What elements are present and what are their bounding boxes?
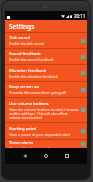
- button[interactable]: Settings: [5, 20, 87, 32]
- staticText: Vibration feedback: [9, 68, 46, 74]
- button[interactable]: Sound feedback: [5, 49, 87, 64]
- staticText: Enable the tick sound: [9, 41, 45, 46]
- staticText: Timer alarm: [9, 140, 33, 146]
- staticText: Have a pause at your stopwatch start: [9, 132, 70, 137]
- staticText: Enable the vibration feedback: [9, 74, 58, 79]
- button[interactable]: Vibration feedback: [5, 65, 87, 81]
- button[interactable]: Timer alarm: [5, 140, 87, 148]
- staticText: Uses the volume buttons to start / resum…: [9, 107, 79, 120]
- staticText: Prevents the screen from going off: [9, 90, 67, 95]
- staticText: Settings: [9, 22, 35, 31]
- button[interactable]: Home: [41, 149, 51, 163]
- staticText: Tick sound: [9, 35, 31, 41]
- staticText: Choose the alarm sound: [9, 146, 50, 148]
- staticText: Starting point: [9, 126, 37, 132]
- button[interactable]: Back: [20, 149, 30, 163]
- staticText: Sound feedback: [9, 51, 41, 57]
- staticText: Keep screen on: [9, 84, 40, 90]
- button[interactable]: Use volume buttons: [5, 98, 87, 122]
- button[interactable]: Starting point: [5, 123, 87, 139]
- button[interactable]: Recents: [62, 149, 72, 163]
- button[interactable]: Keep screen on: [5, 82, 87, 97]
- staticText: Use volume buttons: [9, 101, 49, 107]
- staticText: 20:11: [74, 13, 86, 19]
- button[interactable]: Tick sound: [5, 33, 87, 48]
- staticText: Enable the sound feedback: [9, 57, 54, 62]
